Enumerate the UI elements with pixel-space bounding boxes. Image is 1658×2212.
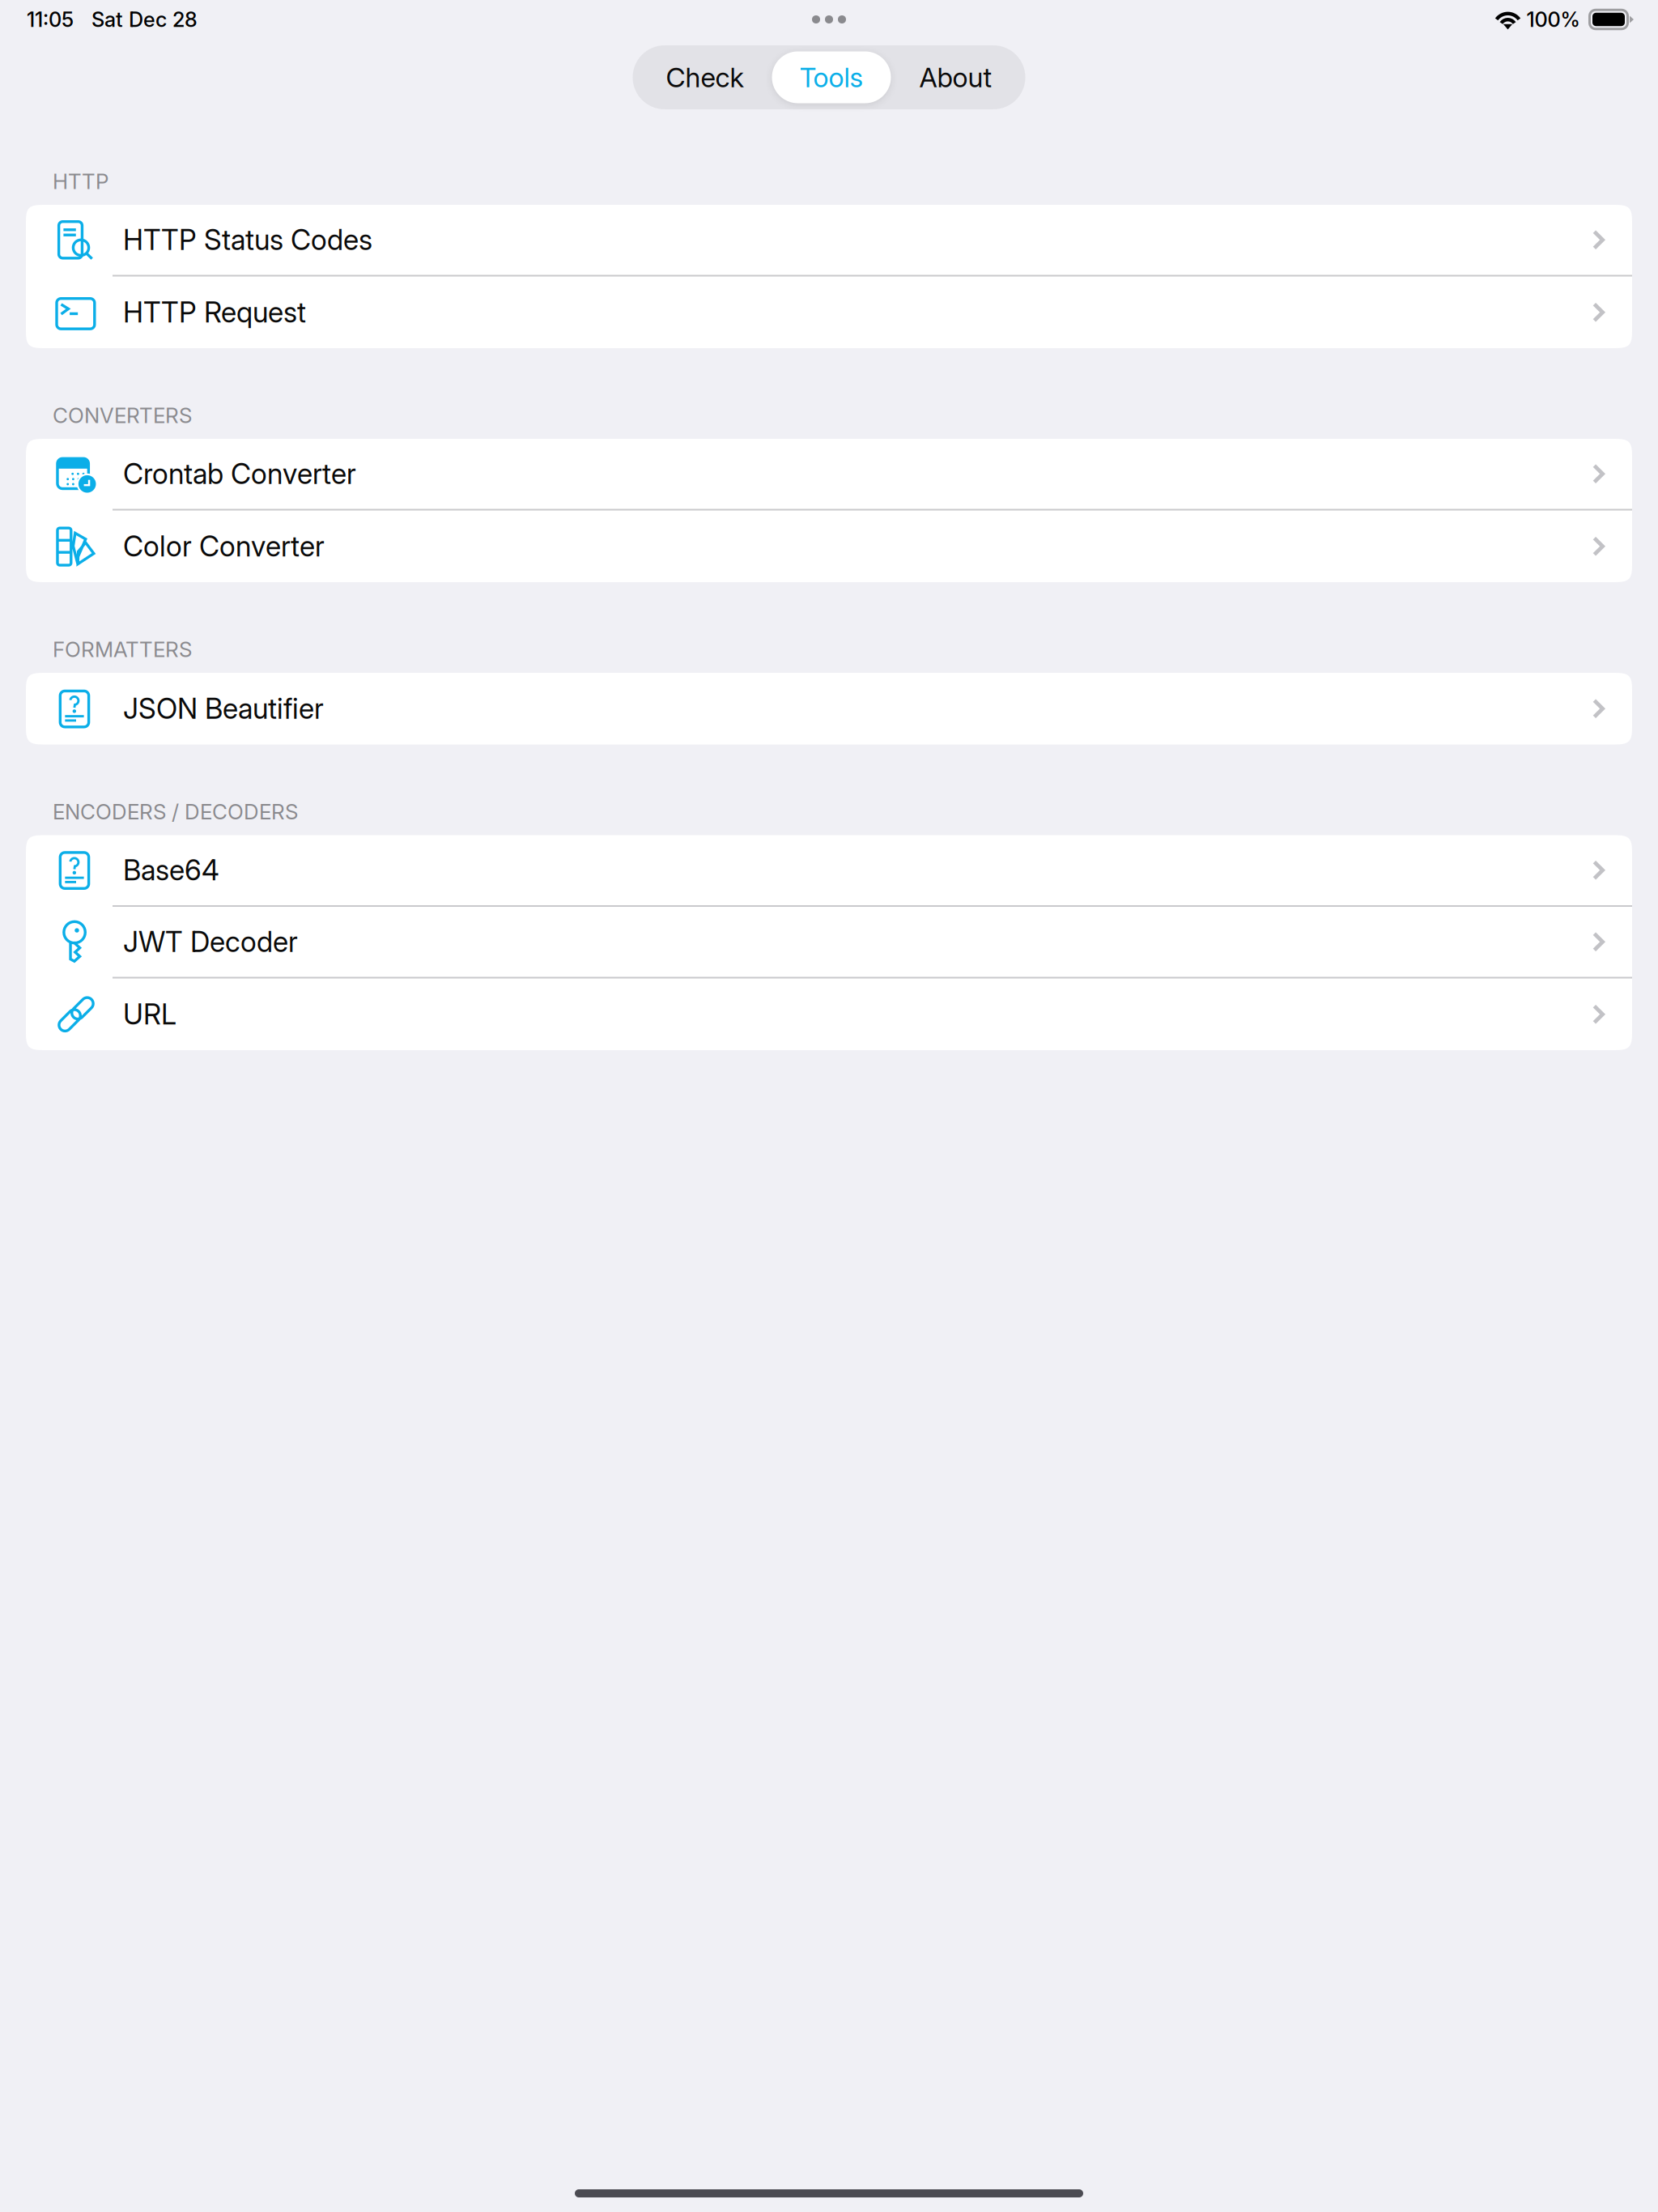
button[interactable]: JWT Decoder [26,907,1632,978]
staticText: CONVERTERS [53,403,192,428]
staticText: URL [123,997,176,1031]
staticText: JWT Decoder [123,925,298,959]
button[interactable]: URL [26,978,1632,1050]
button[interactable]: About [897,51,1015,103]
staticText: Sat Dec 28 [91,7,198,32]
button[interactable]: HTTP Status Codes [26,205,1632,276]
button[interactable]: Tools [772,51,891,103]
staticText: Base64 [123,853,219,887]
staticText: Check [666,61,744,94]
staticText: 11:05 [27,7,74,32]
button[interactable]: HTTP Request [26,276,1632,348]
staticText: JSON Beautifier [123,692,324,726]
staticText: Tools [799,61,863,94]
button[interactable]: Check [643,51,766,103]
button[interactable]: Crontab Converter [26,439,1632,510]
button[interactable]: Base64 [26,835,1632,907]
staticText: Color Converter [123,529,325,563]
staticText: FORMATTERS [53,637,192,662]
button[interactable]: JSON Beautifier [26,673,1632,744]
staticText: HTTP Request [123,295,306,329]
button[interactable]: Color Converter [26,510,1632,582]
staticText: HTTP [53,169,108,194]
staticText: 100% [1526,7,1580,32]
staticText: ENCODERS / DECODERS [53,799,298,824]
staticText: Crontab Converter [123,457,356,491]
staticText: HTTP Status Codes [123,223,372,257]
staticText: About [919,61,992,94]
